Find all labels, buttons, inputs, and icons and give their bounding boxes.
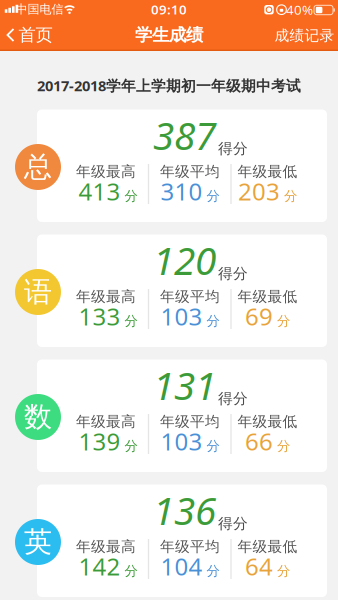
staticText: 首页 xyxy=(18,24,52,46)
staticText: 年级平均 xyxy=(160,537,220,555)
staticText: 103 xyxy=(160,425,202,457)
staticText: 分 xyxy=(277,438,290,454)
staticText: 分 xyxy=(206,438,219,454)
staticText: 136 xyxy=(153,484,216,536)
staticText: 分 xyxy=(124,438,137,454)
staticText: 得分 xyxy=(218,265,248,283)
staticText: 310 xyxy=(160,175,202,207)
staticText: 年级最高 xyxy=(76,162,136,180)
staticText: 09:10 xyxy=(151,0,187,18)
staticText: 64 xyxy=(245,550,273,582)
staticText: 104 xyxy=(160,550,202,582)
staticText: 分 xyxy=(124,313,137,329)
staticText: 分 xyxy=(206,563,219,579)
staticText: 语 xyxy=(24,275,52,309)
staticText: 69 xyxy=(245,300,273,332)
button[interactable]: 120 xyxy=(0,234,338,347)
staticText: 413 xyxy=(78,175,120,207)
staticText: 年级最低 xyxy=(237,412,297,430)
staticText: 203 xyxy=(238,175,280,207)
staticText: 年级最低 xyxy=(237,287,297,305)
staticText: 103 xyxy=(160,300,202,332)
button[interactable]: 136 xyxy=(0,484,338,597)
staticText: 分 xyxy=(124,563,137,579)
staticText: 131 xyxy=(153,359,216,411)
staticText: 年级最高 xyxy=(76,537,136,555)
staticText: 分 xyxy=(277,563,290,579)
staticText: 学生成绩 xyxy=(135,24,203,46)
staticText: 分 xyxy=(124,188,137,204)
staticText: 133 xyxy=(78,300,120,332)
staticText: 分 xyxy=(206,313,219,329)
staticText: 分 xyxy=(284,188,297,204)
staticText: 分 xyxy=(277,313,290,329)
staticText: 数 xyxy=(24,400,52,434)
staticText: 得分 xyxy=(218,140,248,158)
button[interactable]: 387 xyxy=(0,109,338,222)
staticText: 得分 xyxy=(218,515,248,533)
staticText: 年级最低 xyxy=(237,537,297,555)
staticText: 年级平均 xyxy=(160,162,220,180)
staticText: 成绩记录 xyxy=(274,26,334,44)
staticText: 40% xyxy=(286,1,313,18)
staticText: 分 xyxy=(206,188,219,204)
staticText: 66 xyxy=(245,425,273,457)
staticText: 中国电信 xyxy=(15,2,63,17)
staticText: 年级最高 xyxy=(76,412,136,430)
staticText: 387 xyxy=(153,109,216,161)
staticText: 年级平均 xyxy=(160,287,220,305)
staticText: 2017-2018学年上学期初一年级期中考试 xyxy=(37,76,301,95)
staticText: 总 xyxy=(24,150,52,184)
button[interactable]: 131 xyxy=(0,359,338,472)
staticText: 120 xyxy=(153,234,216,286)
staticText: 139 xyxy=(78,425,120,457)
staticText: 142 xyxy=(78,550,120,582)
staticText: 年级最高 xyxy=(76,287,136,305)
staticText: 年级平均 xyxy=(160,412,220,430)
button[interactable]: 首页 xyxy=(6,24,52,46)
button[interactable]: 成绩记录 xyxy=(274,26,334,44)
staticText: 英 xyxy=(24,525,52,559)
staticText: 年级最低 xyxy=(237,162,297,180)
staticText: 得分 xyxy=(218,390,248,408)
